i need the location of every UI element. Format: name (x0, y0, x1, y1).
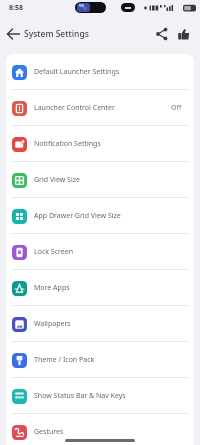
staticText: Off (171, 103, 182, 113)
button[interactable]: Lock Screen (6, 234, 194, 270)
staticText: App Drawer Grid View Size (34, 211, 121, 221)
staticText: Gestures (34, 427, 64, 437)
button[interactable] (4, 24, 24, 44)
button[interactable]: Gestures (6, 414, 194, 445)
staticText: Launcher Control Center (34, 103, 115, 113)
button[interactable]: Default Launcher Settings (6, 54, 194, 90)
button[interactable] (176, 26, 192, 42)
staticText: Lock Screen (34, 247, 73, 257)
staticText: Wallpapers (34, 319, 71, 329)
staticText: System Settings (24, 28, 89, 40)
button[interactable]: Grid View Size (6, 162, 194, 198)
staticText: Notification Settings (34, 139, 101, 149)
staticText: Default Launcher Settings (34, 67, 120, 77)
button[interactable]: More Apps (6, 270, 194, 306)
button[interactable]: App Drawer Grid View Size (6, 198, 194, 234)
button[interactable]: Theme / Icon Pack (6, 342, 194, 378)
button[interactable]: Notification Settings (6, 126, 194, 162)
button[interactable] (154, 26, 170, 42)
button[interactable]: Launcher Control Center (6, 90, 194, 126)
button[interactable]: Show Status Bar & Nav Keys (6, 378, 194, 414)
staticText: Show Status Bar & Nav Keys (34, 391, 126, 401)
staticText: Grid View Size (34, 175, 80, 185)
staticText: More Apps (34, 283, 70, 293)
staticText: Theme / Icon Pack (34, 355, 95, 365)
button[interactable]: Wallpapers (6, 306, 194, 342)
staticText: 8:58 (9, 3, 23, 13)
